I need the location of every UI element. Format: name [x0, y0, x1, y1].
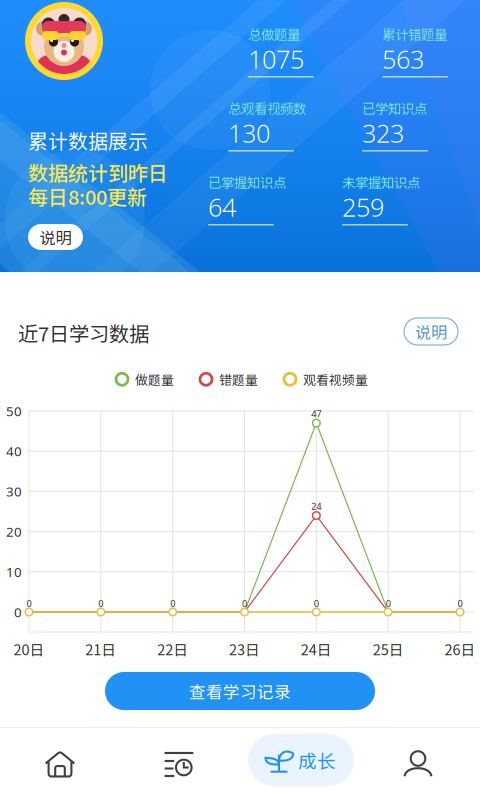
- button[interactable]: 查看学习记录: [105, 672, 375, 710]
- staticText: 20: [6, 523, 22, 540]
- staticText: 1075: [248, 42, 304, 76]
- staticText: 30: [6, 482, 22, 500]
- button[interactable]: 我的: [358, 728, 478, 800]
- staticText: 0: [386, 597, 391, 610]
- staticText: 0: [457, 597, 462, 610]
- staticText: 50: [6, 402, 22, 420]
- staticText: 0: [26, 597, 31, 610]
- staticText: 323: [362, 116, 404, 150]
- button[interactable]: 说明: [404, 318, 458, 345]
- staticText: 259: [342, 190, 384, 224]
- staticText: 0: [314, 597, 319, 610]
- staticText: 数据统计到昨日: [28, 157, 168, 186]
- staticText: 查看学习记录: [189, 679, 291, 703]
- staticText: 20日: [13, 638, 44, 659]
- staticText: 0: [242, 597, 247, 610]
- staticText: 23日: [229, 638, 260, 659]
- staticText: 130: [228, 116, 270, 150]
- staticText: 10: [6, 563, 22, 581]
- staticText: 成长: [298, 746, 336, 773]
- staticText: 累计数据展示: [28, 126, 148, 154]
- staticText: 说明: [415, 320, 447, 343]
- staticText: 40: [6, 442, 22, 460]
- staticText: 已掌握知识点: [208, 172, 286, 192]
- staticText: 做题量: [135, 370, 174, 388]
- staticText: 错题量: [219, 370, 258, 388]
- button[interactable]: 学习记录: [119, 728, 239, 800]
- staticText: 每日8:00更新: [28, 181, 147, 210]
- staticText: 21日: [85, 638, 116, 659]
- staticText: 未掌握知识点: [342, 172, 420, 192]
- staticText: 24日: [301, 638, 332, 659]
- staticText: 总观看视频数: [228, 98, 306, 118]
- staticText: 近7日学习数据: [18, 318, 149, 347]
- staticText: 0: [14, 603, 22, 621]
- staticText: 说明: [39, 225, 71, 249]
- button[interactable]: 说明: [28, 224, 83, 250]
- staticText: 22日: [157, 638, 188, 659]
- staticText: 563: [382, 42, 424, 76]
- button[interactable]: 成长: [248, 734, 354, 786]
- staticText: 25日: [373, 638, 404, 659]
- button[interactable]: 首页: [0, 728, 120, 800]
- staticText: 累计错题量: [382, 24, 447, 44]
- staticText: 24: [311, 500, 321, 512]
- staticText: 64: [208, 190, 236, 224]
- staticText: 0: [170, 597, 175, 610]
- staticText: 26日: [444, 638, 475, 659]
- staticText: 47: [311, 407, 321, 420]
- staticText: 0: [98, 597, 103, 610]
- staticText: 已学知识点: [362, 98, 427, 118]
- staticText: 观看视频量: [303, 370, 368, 388]
- staticText: 总做题量: [248, 24, 300, 44]
